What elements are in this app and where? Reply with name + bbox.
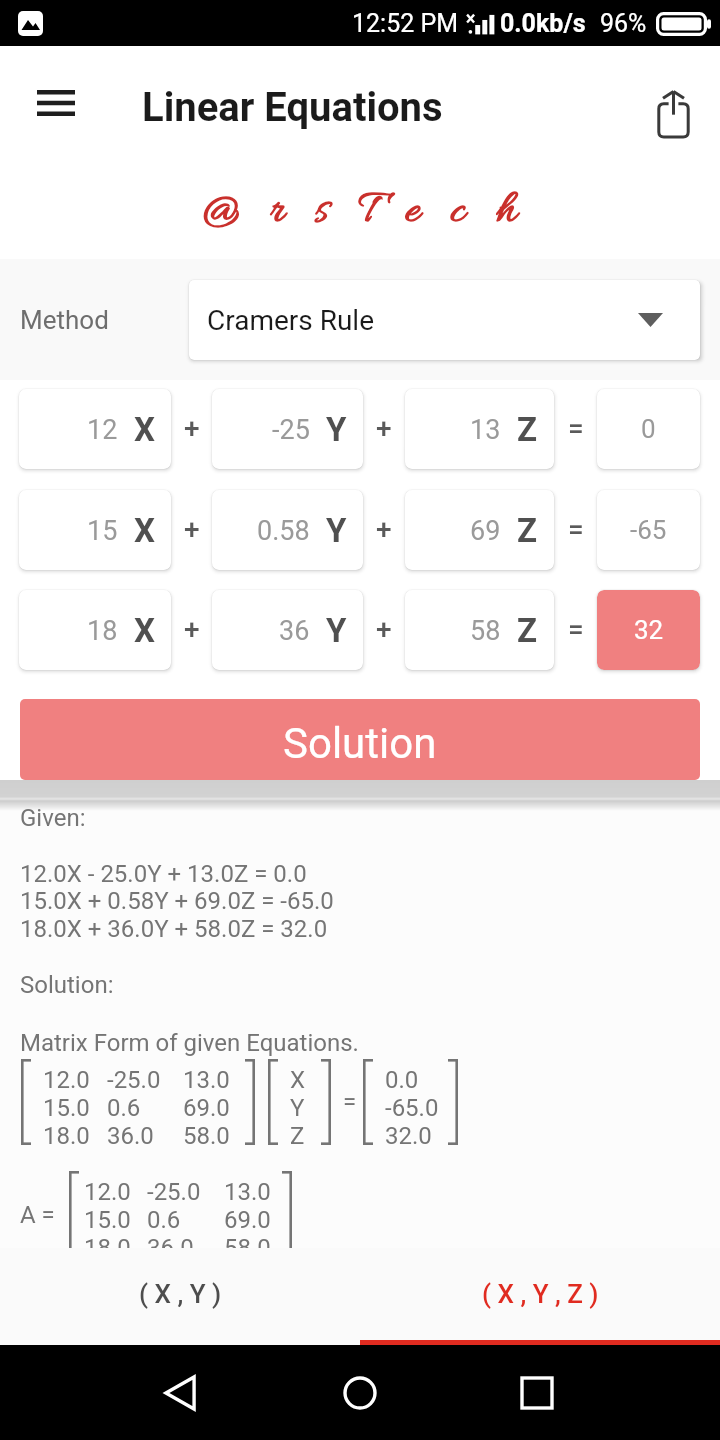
staticText: ( X , Y , Z ) — [482, 1279, 599, 1309]
staticText: 0.6 — [107, 1094, 141, 1122]
staticText: Z — [517, 611, 538, 650]
staticText: -25.0 — [107, 1066, 161, 1094]
button[interactable]: 12 — [19, 389, 171, 469]
button[interactable]: 36 — [212, 590, 363, 670]
staticText: + — [376, 613, 392, 646]
staticText: 12:52 PM — [352, 9, 459, 38]
staticText: X — [290, 1066, 306, 1094]
staticText: -25.0 — [147, 1178, 201, 1206]
staticText: @ r s T e c h — [203, 182, 527, 241]
staticText: 15.0X + 0.58Y + 69.0Z = -65.0 — [20, 887, 334, 915]
staticText: 0.0kb/s — [500, 9, 586, 38]
staticText: A = — [20, 1201, 55, 1229]
staticText: 32 — [634, 615, 664, 645]
button[interactable]: Solution — [20, 699, 700, 780]
staticText: 18.0 — [43, 1122, 90, 1150]
button[interactable]: Cramers Rule — [189, 280, 700, 360]
staticText: Cramers Rule — [207, 304, 375, 337]
staticText: 13 — [470, 414, 501, 446]
staticText: 58 — [470, 615, 501, 647]
staticText: 96% — [600, 9, 647, 38]
staticText: Y — [326, 410, 347, 449]
staticText: X — [134, 611, 155, 650]
button[interactable]: 58 — [405, 590, 554, 670]
staticText: 18 — [87, 615, 118, 647]
staticText: + — [184, 613, 200, 646]
button[interactable]: 0 — [597, 389, 700, 469]
staticText: Linear Equations — [142, 84, 443, 131]
button[interactable]: Back — [148, 1361, 212, 1425]
staticText: 69.0 — [224, 1206, 271, 1234]
staticText: 15.0 — [84, 1206, 131, 1234]
staticText: 58.0 — [224, 1234, 271, 1262]
staticText: 0.6 — [147, 1206, 181, 1234]
staticText: 13.0 — [183, 1066, 230, 1094]
staticText: 0.58 — [257, 515, 310, 547]
staticText: Z — [290, 1122, 305, 1150]
button[interactable]: Open navigation menu — [19, 70, 93, 136]
staticText: 69.0 — [183, 1094, 230, 1122]
staticText: ( X , Y ) — [139, 1279, 222, 1309]
staticText: Z — [517, 511, 538, 550]
staticText: + — [184, 412, 200, 445]
staticText: -25 — [272, 414, 310, 446]
staticText: 15.0 — [43, 1094, 90, 1122]
staticText: X — [134, 511, 155, 550]
staticText: Solution: — [20, 971, 114, 999]
staticText: 69 — [470, 515, 501, 547]
staticText: 12.0X - 25.0Y + 13.0Z = 0.0 — [20, 860, 307, 888]
button[interactable]: 15 — [19, 490, 171, 570]
button[interactable]: 32 — [597, 590, 700, 670]
staticText: = — [568, 613, 584, 646]
button[interactable]: ( X , Y , Z ) — [360, 1248, 720, 1345]
button[interactable]: -25 — [212, 389, 363, 469]
staticText: + — [184, 513, 200, 546]
staticText: Y — [326, 511, 347, 550]
staticText: 12.0 — [43, 1066, 90, 1094]
staticText: Method — [20, 305, 109, 335]
staticText: 12.0 — [84, 1178, 131, 1206]
staticText: 15 — [87, 515, 118, 547]
button[interactable]: 0.58 — [212, 490, 363, 570]
staticText: 13.0 — [224, 1178, 271, 1206]
staticText: 58.0 — [183, 1122, 230, 1150]
staticText: + — [376, 513, 392, 546]
button[interactable]: Recent apps — [505, 1361, 569, 1425]
staticText: Matrix Form of given Equations. — [20, 1029, 359, 1057]
button[interactable]: 13 — [405, 389, 554, 469]
button[interactable]: 18 — [19, 590, 171, 670]
staticText: Y — [290, 1094, 305, 1122]
button[interactable]: 69 — [405, 490, 554, 570]
staticText: Z — [517, 410, 538, 449]
staticText: Y — [326, 611, 347, 650]
staticText: 36.0 — [107, 1122, 154, 1150]
staticText: X — [134, 410, 155, 449]
button[interactable]: Share — [645, 80, 701, 146]
staticText: = — [343, 1088, 357, 1116]
staticText: + — [376, 412, 392, 445]
staticText: = — [568, 513, 584, 546]
staticText: 12 — [87, 414, 118, 446]
staticText: 32.0 — [385, 1122, 432, 1150]
staticText: 18.0X + 36.0Y + 58.0Z = 32.0 — [20, 915, 328, 943]
staticText: Solution — [283, 719, 437, 768]
staticText: -65.0 — [385, 1094, 439, 1122]
button[interactable]: ( X , Y ) — [0, 1248, 360, 1345]
staticText: 0.0 — [385, 1066, 419, 1094]
staticText: -65 — [630, 515, 667, 545]
button[interactable]: -65 — [597, 490, 700, 570]
staticText: 0 — [641, 414, 656, 444]
staticText: 18.0 — [84, 1234, 131, 1262]
staticText: 36.0 — [147, 1234, 194, 1262]
staticText: Given: — [20, 804, 86, 832]
staticText: 36 — [279, 615, 310, 647]
staticText: = — [568, 412, 584, 445]
button[interactable]: Home — [328, 1361, 392, 1425]
